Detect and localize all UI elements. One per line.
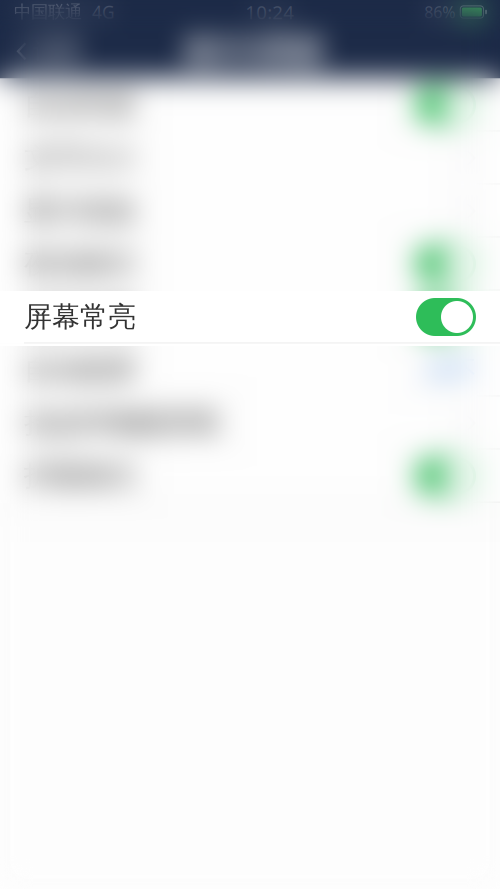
- staticText: 显示与亮度: [183, 34, 323, 68]
- staticText: 4G: [82, 0, 115, 23]
- button[interactable]: 文字大小: [0, 131, 500, 184]
- staticText: 永不: [426, 354, 476, 385]
- button[interactable]: 自动锁屏: [0, 343, 500, 396]
- staticText: 86%: [424, 1, 455, 23]
- staticText: 抬起时唤醒屏幕: [24, 406, 220, 440]
- staticText: 显示与亮度: [184, 34, 324, 68]
- button[interactable]: 设置: [0, 24, 81, 78]
- staticText: 设置: [33, 36, 81, 66]
- staticText: 夜览模式: [24, 247, 136, 281]
- button[interactable]: 抬起时唤醒屏幕: [0, 396, 500, 449]
- staticText: 显示与亮度: [183, 34, 323, 68]
- button[interactable]: 夜览模式: [0, 237, 500, 290]
- button[interactable]: 自动亮度: [0, 78, 500, 131]
- button[interactable]: 护眼模式: [0, 449, 500, 502]
- staticText: 显示与亮度: [183, 35, 323, 69]
- button[interactable]: 屏幕常亮: [0, 290, 500, 343]
- staticText: 10:24: [245, 0, 294, 24]
- button[interactable]: 显示缩放: [0, 184, 500, 237]
- staticText: 显示缩放: [24, 194, 136, 228]
- staticText: 自动锁屏: [24, 353, 136, 387]
- staticText: 显示与亮度: [183, 33, 323, 68]
- staticText: 护眼模式: [24, 459, 136, 493]
- staticText: 中国联通: [14, 1, 82, 23]
- staticText: 屏幕常亮: [24, 300, 136, 334]
- staticText: 自动亮度: [24, 88, 136, 122]
- staticText: 文字大小: [24, 141, 136, 175]
